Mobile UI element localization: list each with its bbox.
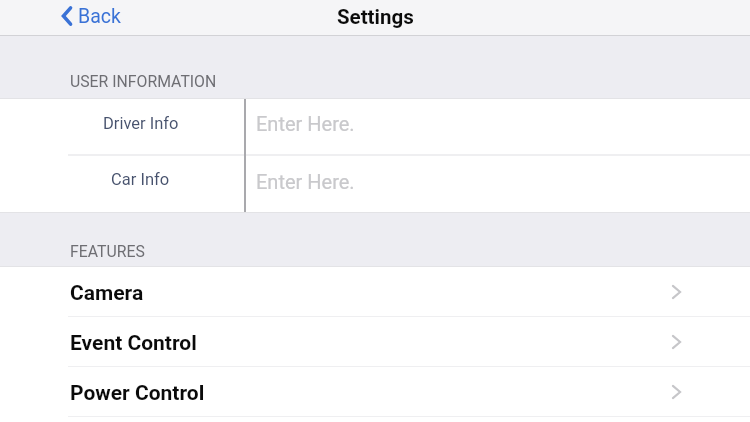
button[interactable]: Back [60,0,122,36]
staticText: Back [78,5,121,28]
staticText: Enter Here. [256,112,355,135]
other: Open Camera [672,285,681,299]
staticText: USER INFORMATION [70,72,217,91]
staticText: Power Control [70,381,205,406]
staticText: FEATURES [70,242,145,261]
staticText: Settings [337,5,414,29]
staticText: Driver Info [103,114,179,133]
button[interactable]: Power Control [0,367,750,417]
staticText: Enter Here. [256,170,355,193]
button[interactable]: Driver Info [0,99,750,154]
other: Open Event Control [672,335,681,349]
button[interactable]: Event Control [0,317,750,367]
staticText: Camera [70,281,144,306]
other: Open Power Control [672,385,681,399]
staticText: Car Info [111,170,170,189]
button[interactable]: Camera [0,267,750,317]
staticText: Event Control [70,331,197,356]
button[interactable]: Car Info [0,156,750,212]
